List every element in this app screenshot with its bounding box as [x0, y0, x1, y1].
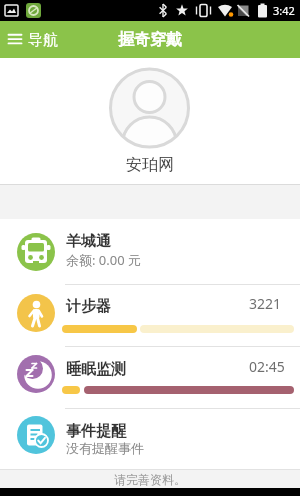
staticText: 02:45 — [249, 357, 285, 376]
staticText: 导航 — [28, 31, 58, 50]
button[interactable]: 睡眠监测 — [0, 347, 300, 408]
button[interactable]: 羊城通 — [0, 219, 300, 284]
button[interactable]: 安珀网 — [0, 58, 300, 184]
staticText: 握奇穿戴 — [118, 30, 182, 50]
staticText: 3221 — [249, 294, 282, 313]
staticText: 羊城通 — [66, 232, 111, 251]
staticText: 安珀网 — [126, 155, 174, 175]
staticText: 事件提醒 — [66, 422, 126, 441]
button[interactable]: 事件提醒 — [0, 409, 300, 469]
staticText: 睡眠监测 — [66, 360, 126, 379]
staticText: 计步器 — [66, 297, 111, 316]
staticText: 没有提醒事件 — [66, 440, 144, 456]
staticText: 3:42 — [273, 3, 295, 18]
staticText: 请完善资料。 — [114, 472, 186, 487]
button[interactable]: 计步器 — [0, 285, 300, 346]
button[interactable]: 导航 — [0, 26, 58, 54]
staticText: 余额: 0.00 元 — [66, 251, 142, 269]
